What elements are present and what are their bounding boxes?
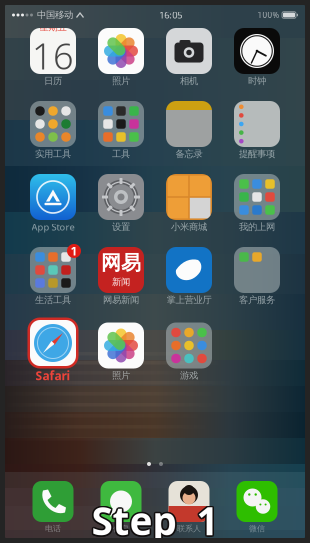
staticText: Step 1 [90,493,217,543]
button[interactable]: 备忘录 [166,101,212,159]
staticText: 照片 [112,370,130,381]
button[interactable]: 工具 [98,101,144,159]
staticText: 16:05 [159,9,182,21]
staticText: 日历 [44,75,62,87]
staticText: Safari [35,367,70,383]
staticText: Step 1 [91,495,218,543]
button[interactable]: 联系人 [166,481,212,533]
button[interactable]: 照片 [98,28,144,86]
staticText: 信息 [113,524,129,533]
staticText: 16 [32,32,74,79]
staticText: 设置 [112,221,130,233]
staticText: 小米商城 [171,221,207,233]
staticText: 实用工具 [35,148,71,160]
button[interactable]: 客户服务 [234,247,280,305]
staticText: 1 [70,243,77,259]
staticText: Step 1 [90,496,217,543]
button[interactable]: 网易 [98,247,144,305]
staticText: 照片 [112,75,130,87]
button[interactable]: 实用工具 [30,101,76,159]
staticText: Step 1 [93,496,220,543]
button[interactable]: 微信 [234,481,280,533]
staticText: Step 1 [93,495,220,543]
button[interactable]: Safari [30,320,76,383]
staticText: 游戏 [180,370,198,381]
staticText: 相机 [180,75,198,87]
staticText: 新闻 [112,276,130,288]
staticText: 100% [257,10,279,20]
button[interactable]: 时钟 [234,28,280,86]
staticText: 星期五 [39,21,66,33]
button[interactable]: 星期五 [30,28,76,86]
staticText: 网易 [101,250,141,275]
staticText: Step 1 [91,493,218,543]
button[interactable]: 相机 [166,28,212,86]
staticText: 掌上营业厅 [166,294,211,306]
button[interactable]: 小米商城 [166,174,212,232]
staticText: 微信 [249,524,265,533]
staticText: 工具 [112,148,130,160]
button[interactable]: 游戏 [166,322,212,380]
button[interactable]: App Store [30,174,76,232]
staticText: App Store [31,221,74,233]
staticText: 备忘录 [175,148,202,160]
staticText: 提醒事项 [239,148,275,160]
staticText: 网易新闻 [103,294,139,306]
staticText: Step 1 [90,495,217,543]
button[interactable]: 提醒事项 [234,101,280,159]
button[interactable]: 信息 [98,481,144,533]
staticText: 生活工具 [35,294,71,306]
button[interactable]: 电话 [30,481,76,533]
staticText: 客户服务 [239,294,275,306]
button[interactable]: 掌上营业厅 [166,247,212,305]
staticText: Step 1 [91,496,218,543]
staticText: Step 1 [93,493,220,543]
staticText: 时钟 [248,75,266,87]
button[interactable]: 我的上网 [234,174,280,232]
button[interactable]: 设置 [98,174,144,232]
staticText: 联系人 [177,524,201,533]
staticText: 中国移动 [37,9,73,21]
staticText: 我的上网 [239,221,275,233]
button[interactable]: 照片 [98,322,144,380]
button[interactable]: 生活工具 [30,247,76,305]
staticText: 电话 [45,524,61,533]
